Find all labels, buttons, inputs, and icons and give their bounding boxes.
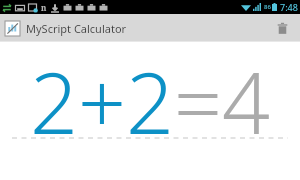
- staticText: 7:48: [280, 1, 298, 13]
- staticText: MyScript Calculator: [26, 21, 127, 36]
- staticText: 2+2=4: [30, 44, 270, 139]
- button[interactable]: Clear canvas: [269, 15, 295, 41]
- button[interactable]: 2+2=4: [0, 44, 300, 139]
- staticText: n: [41, 2, 47, 13]
- staticText: 86: [264, 3, 271, 11]
